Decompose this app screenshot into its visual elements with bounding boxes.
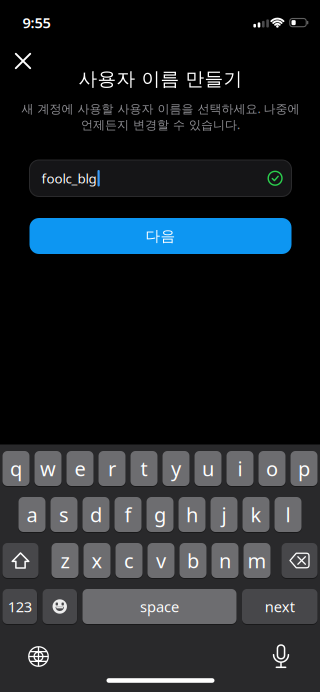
staticText: space [140,597,179,616]
button[interactable]: y [162,451,189,486]
staticText: o [266,455,278,482]
staticText: n [219,547,231,574]
staticText: d [90,501,102,528]
button[interactable]: d [82,497,109,532]
staticText: 사용자 이름 만들기 [78,67,242,90]
staticText: k [250,501,261,528]
staticText: z [60,547,69,574]
button[interactable]: s [50,497,77,532]
staticText: q [10,455,22,482]
button[interactable]: Emoji [42,589,77,624]
button[interactable]: p [290,451,317,486]
staticText: 새 계정에 사용할 사용자 이름을 선택하세요. 나중에 [21,100,299,116]
button[interactable]: Close [6,44,40,78]
staticText: w [40,455,56,482]
staticText: 9:55 [22,13,50,32]
button[interactable]: c [115,543,142,578]
button[interactable]: i [226,451,253,486]
button[interactable]: space [82,589,236,624]
button[interactable]: 123 [2,589,37,624]
staticText: e [74,455,85,482]
button[interactable]: a [18,497,45,532]
staticText: m [247,547,266,574]
staticText: foolc_blg [41,169,96,187]
staticText: g [154,501,166,528]
button[interactable]: h [178,497,205,532]
button[interactable]: 다음 [29,218,291,254]
staticText: x [91,547,102,574]
staticText: f [124,501,131,528]
button[interactable]: r [98,451,125,486]
button[interactable]: g [146,497,173,532]
staticText: i [237,455,242,482]
staticText: 123 [8,597,32,616]
button[interactable]: Username [29,160,291,196]
button[interactable]: z [51,543,78,578]
button[interactable]: Shift [2,543,38,578]
button[interactable]: v [147,543,174,578]
button[interactable]: Delete [281,543,317,578]
staticText: p [298,455,310,482]
staticText: 언제든지 변경할 수 있습니다. [81,116,240,132]
button[interactable]: Dictation [264,639,298,673]
button[interactable]: q [2,451,29,486]
staticText: l [285,501,290,528]
staticText: b [187,547,199,574]
button[interactable]: x [83,543,110,578]
button[interactable]: Switch keyboard [21,639,55,673]
staticText: next [265,597,295,616]
button[interactable]: j [210,497,237,532]
button[interactable]: f [114,497,141,532]
button[interactable]: next [242,589,317,624]
staticText: s [59,501,69,528]
button[interactable]: k [242,497,269,532]
staticText: j [221,501,226,528]
button[interactable]: t [130,451,157,486]
button[interactable]: m [243,543,270,578]
button[interactable]: o [258,451,285,486]
button[interactable]: e [66,451,93,486]
button[interactable]: n [211,543,238,578]
staticText: v [156,547,166,574]
staticText: h [186,501,198,528]
button[interactable]: u [194,451,221,486]
staticText: u [202,455,214,482]
staticText: c [124,547,134,574]
staticText: 다음 [145,227,175,245]
staticText: r [108,455,116,482]
button[interactable]: l [274,497,301,532]
button[interactable]: w [34,451,61,486]
button[interactable]: b [179,543,206,578]
staticText: a [26,501,37,528]
staticText: y [171,455,181,482]
staticText: t [140,455,147,482]
